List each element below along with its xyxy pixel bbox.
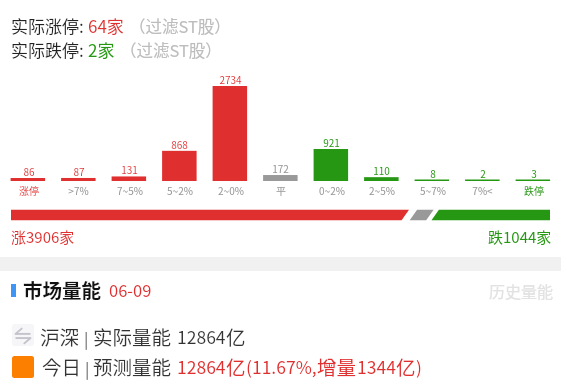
staticText: 1344 — [357, 354, 396, 379]
staticText: 亿 — [226, 352, 246, 380]
staticText: 涨3906家 — [11, 226, 75, 248]
staticText: （过滤ST股） — [129, 14, 231, 38]
staticText: 06-09 — [109, 278, 152, 302]
staticText: 921 — [323, 135, 340, 149]
staticText: 86 — [23, 164, 35, 178]
staticText: 跌1044家 — [488, 226, 552, 248]
staticText: 3 — [531, 166, 537, 180]
staticText: 8 — [430, 166, 436, 180]
staticText: 12864 — [177, 354, 226, 379]
staticText: 预测量能 — [93, 352, 172, 380]
staticText: (11.67%, — [246, 354, 317, 379]
staticText: 实际跌停: — [11, 37, 88, 62]
button[interactable]: Switch market — [12, 324, 34, 346]
staticText: | — [85, 356, 90, 379]
staticText: >7% — [68, 183, 89, 197]
button[interactable]: Forecast volume — [12, 356, 34, 378]
staticText: 增量 — [317, 352, 357, 380]
staticText: 跌停 — [524, 183, 544, 197]
staticText: 亿 — [396, 352, 416, 380]
staticText: ) — [416, 354, 422, 379]
staticText: 2 — [480, 166, 486, 180]
staticText: 2家 — [88, 37, 115, 62]
staticText: 涨停 — [19, 183, 39, 197]
staticText: 5~7% — [420, 183, 446, 197]
staticText: 172 — [272, 161, 289, 175]
staticText: 2734 — [219, 72, 242, 86]
staticText: 2~5% — [369, 183, 395, 197]
staticText: 12864 — [177, 324, 226, 349]
staticText: 沪深 — [40, 322, 80, 350]
staticText: 7%< — [472, 183, 493, 197]
staticText: （过滤ST股） — [120, 38, 222, 62]
staticText: 110 — [373, 163, 390, 177]
staticText: 实际涨停: — [11, 13, 88, 38]
staticText: 历史量能 — [489, 279, 554, 302]
staticText: 市场量能 — [23, 275, 102, 303]
staticText: 0~2% — [319, 183, 345, 197]
staticText: 亿 — [226, 322, 246, 350]
button[interactable]: 历史量能 — [484, 276, 559, 305]
staticText: 2~0% — [218, 183, 244, 197]
staticText: 64家 — [88, 13, 124, 38]
staticText: 5~2% — [167, 183, 193, 197]
staticText: 868 — [171, 137, 188, 151]
staticText: 131 — [121, 162, 138, 176]
staticText: 7~5% — [117, 183, 143, 197]
staticText: 今日 — [42, 352, 82, 380]
staticText: 平 — [276, 183, 286, 197]
staticText: 87 — [73, 164, 85, 178]
staticText: | — [84, 326, 89, 349]
staticText: 实际量能 — [93, 322, 172, 350]
